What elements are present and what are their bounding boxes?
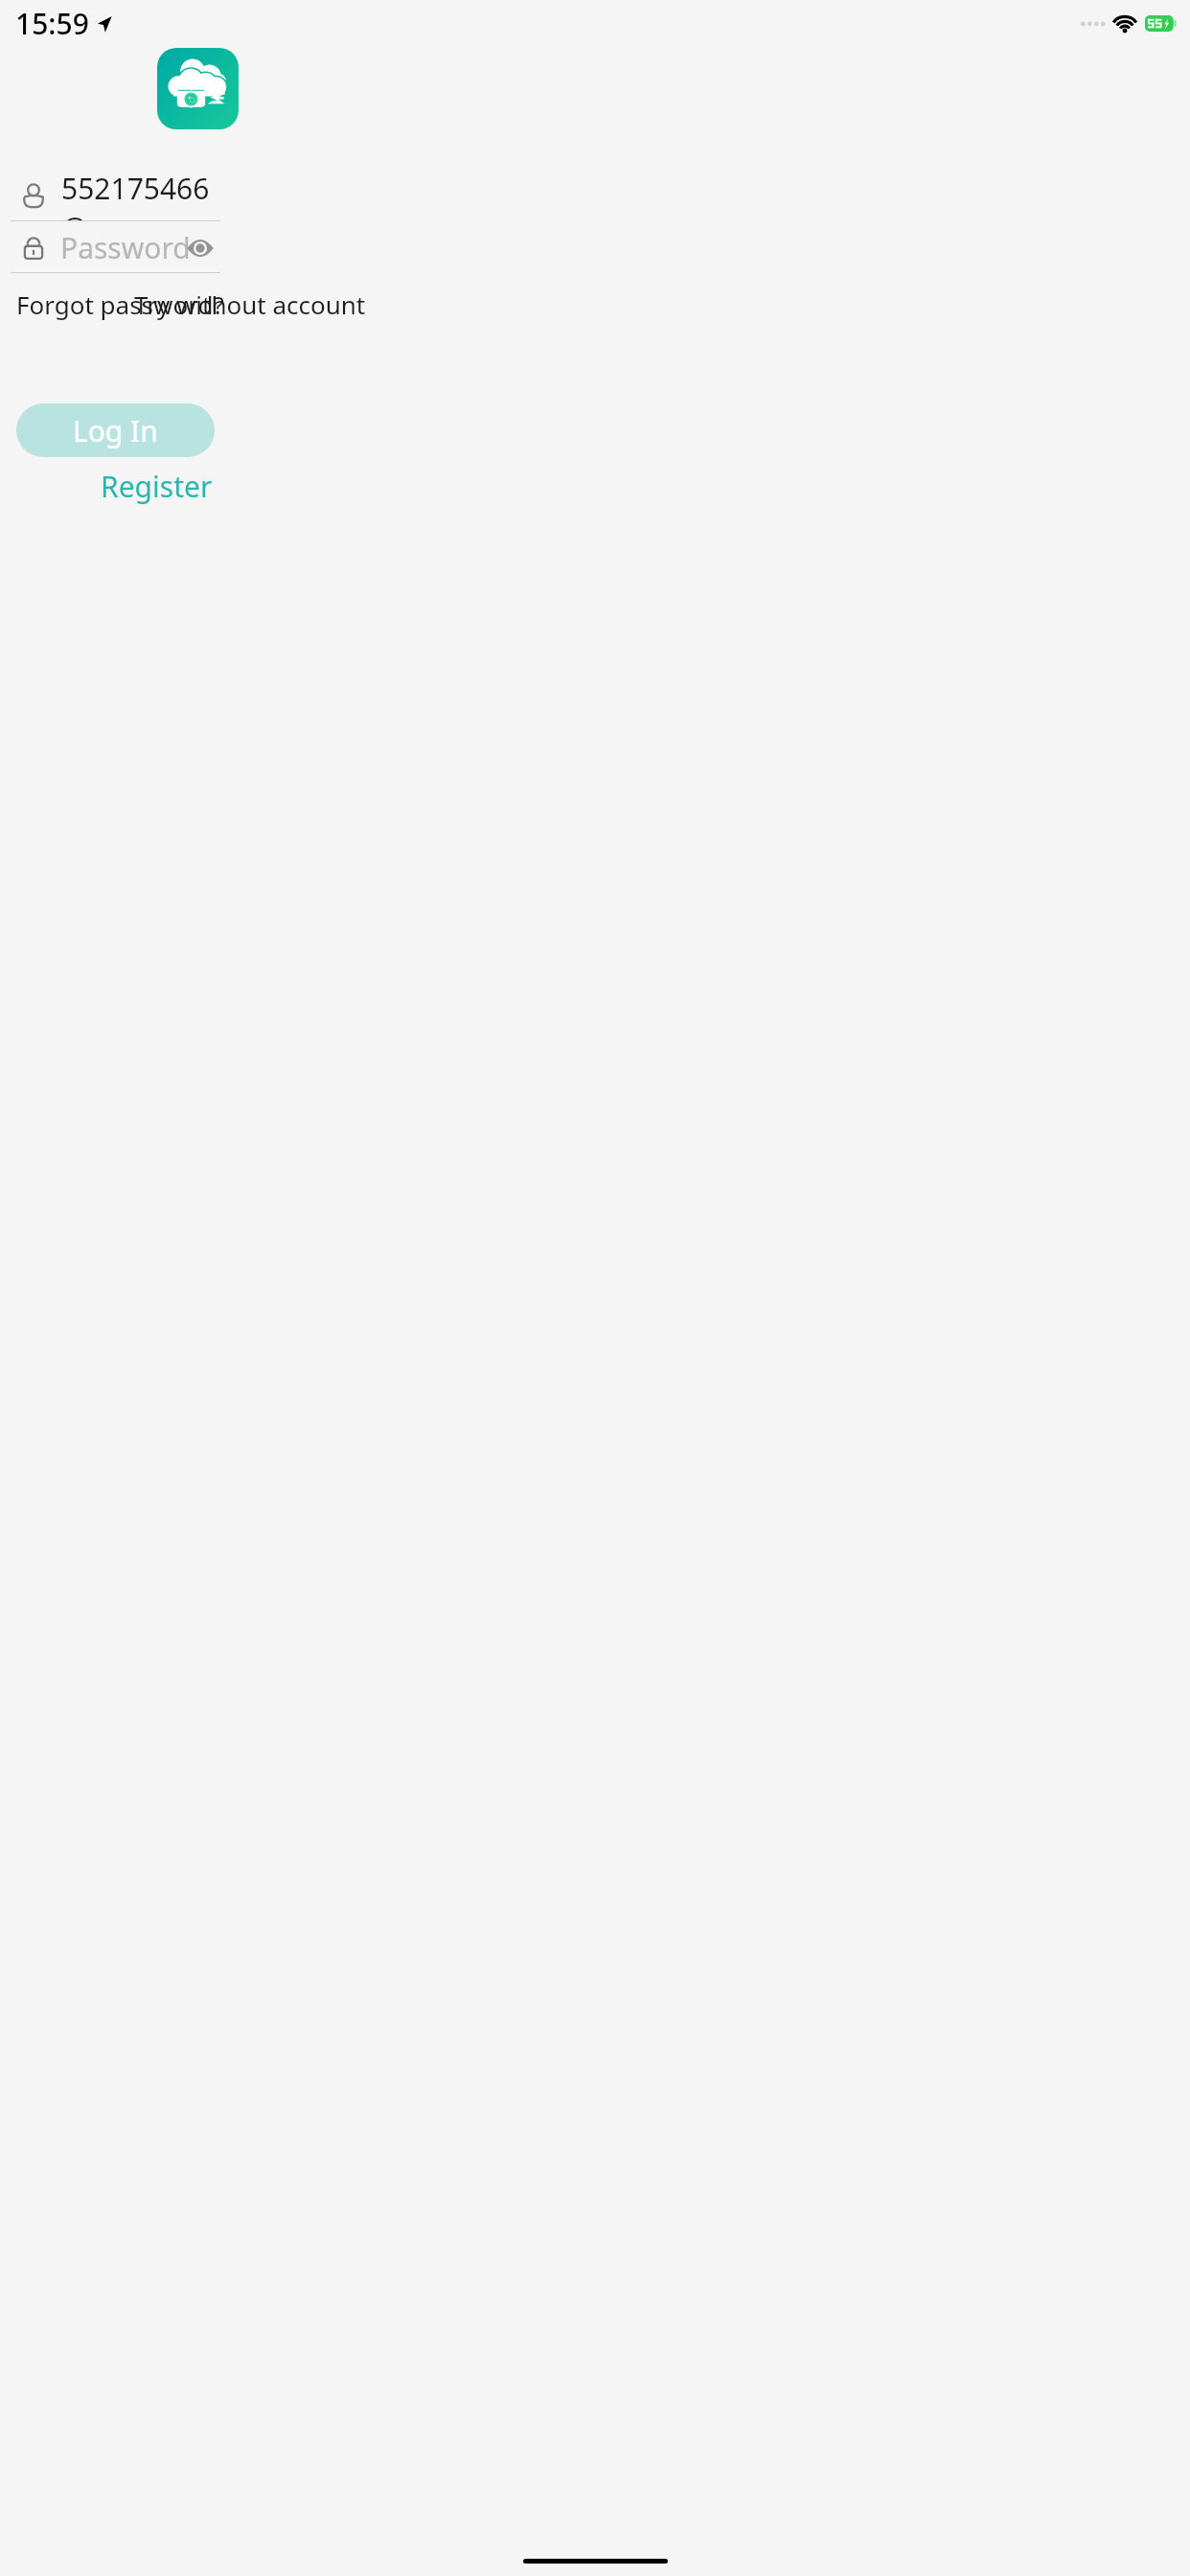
button[interactable]: Show password [184,232,217,264]
staticText: Try without account [134,287,366,321]
button[interactable]: Password [11,221,221,273]
staticText: Register [101,467,213,505]
button[interactable]: Register [91,467,222,505]
staticText: 15:59 [15,4,89,43]
staticText: Forgot password? [16,287,224,321]
button[interactable]: Forgot password? [11,287,230,321]
staticText: Password [60,228,191,267]
staticText: 552175466@qq.com [61,169,221,221]
button[interactable]: 552175466@qq.com [11,169,221,221]
staticText: Log In [73,411,158,450]
button[interactable]: Log In [16,403,215,457]
button[interactable]: Try without account [128,287,372,321]
